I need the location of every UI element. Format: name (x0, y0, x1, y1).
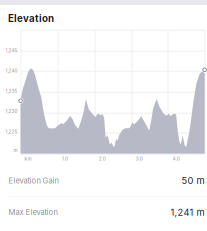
staticText: Elevation Gain (8, 176, 58, 185)
staticText: 3.0 (136, 156, 143, 162)
staticText: Max Elevation (8, 208, 57, 217)
staticText: 50 m (181, 175, 204, 186)
staticText: 1,245 (5, 48, 17, 53)
staticText: 1,240 (5, 68, 17, 74)
staticText: 2.0 (99, 156, 106, 162)
staticText: 1,241 m (170, 207, 204, 218)
staticText: 1.0 (62, 156, 68, 162)
staticText: 1,235 (5, 88, 17, 94)
staticText: m (13, 147, 17, 153)
staticText: Elevation (8, 12, 54, 24)
staticText: km (24, 156, 31, 162)
button[interactable]: Max Elevation (0, 197, 207, 228)
staticText: 4.0 (173, 156, 180, 162)
button[interactable]: Elevation Gain (0, 165, 207, 196)
staticText: 1,225 (5, 129, 17, 134)
staticText: 1,230 (5, 109, 17, 114)
